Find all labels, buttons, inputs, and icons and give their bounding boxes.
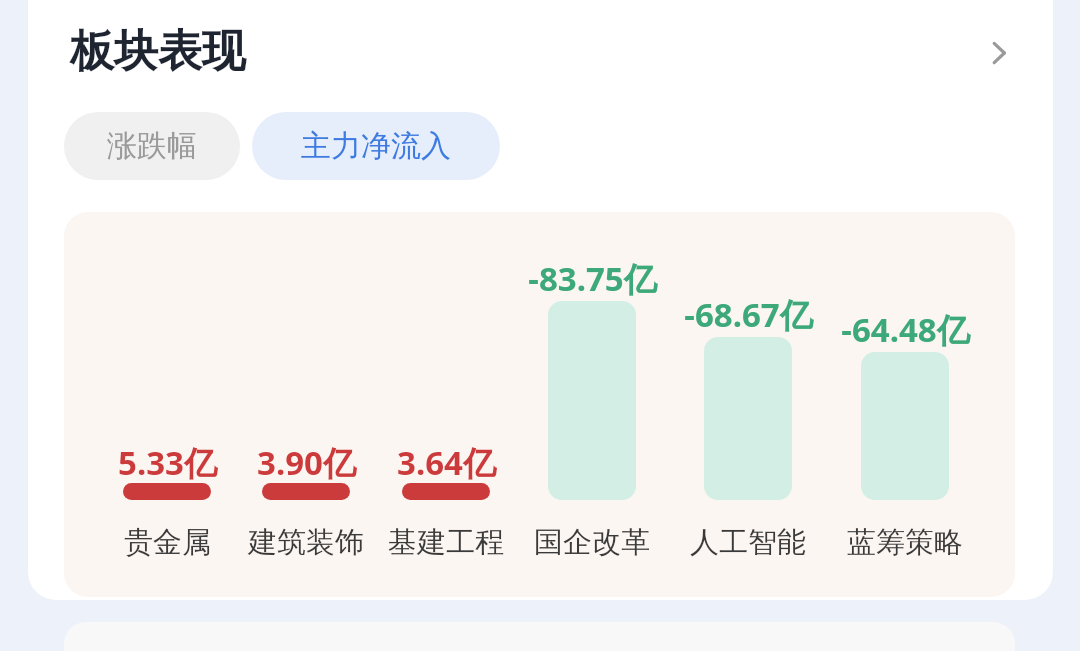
button[interactable] [548,301,636,500]
staticText: 3.64亿 [397,440,496,485]
button[interactable] [28,0,1053,600]
staticText: 国企改革 [534,524,650,561]
button[interactable]: 建筑装饰 [216,524,396,561]
button[interactable]: 人工智能 [658,524,838,561]
staticText: 基建工程 [388,524,504,561]
button[interactable]: 主力净流入 [252,112,500,180]
staticText: 板块表现 [70,24,246,79]
staticText: 建筑装饰 [248,524,364,561]
button[interactable] [402,483,490,500]
button[interactable]: 蓝筹策略 [815,524,995,561]
button[interactable]: 国企改革 [502,524,682,561]
staticText: -68.67亿 [684,292,813,337]
staticText: 涨跌幅 [107,127,197,165]
button[interactable] [704,337,792,500]
staticText: 贵金属 [124,524,211,561]
staticText: 人工智能 [690,524,806,561]
button[interactable]: 基建工程 [356,524,536,561]
button[interactable]: 贵金属 [77,524,257,561]
button[interactable] [262,483,350,500]
button[interactable] [123,483,211,500]
button[interactable]: 板块表现 [68,22,248,81]
staticText: 3.90亿 [257,440,356,485]
button[interactable]: 涨跌幅 [64,112,240,180]
button[interactable] [64,212,1015,597]
staticText: -83.75亿 [528,256,657,301]
staticText: 主力净流入 [301,127,451,165]
staticText: -64.48亿 [841,307,970,352]
staticText: 蓝筹策略 [847,524,963,561]
staticText: 5.33亿 [118,440,217,485]
button[interactable]: 查看更多板块表现 [968,22,1030,84]
button[interactable] [861,352,949,500]
